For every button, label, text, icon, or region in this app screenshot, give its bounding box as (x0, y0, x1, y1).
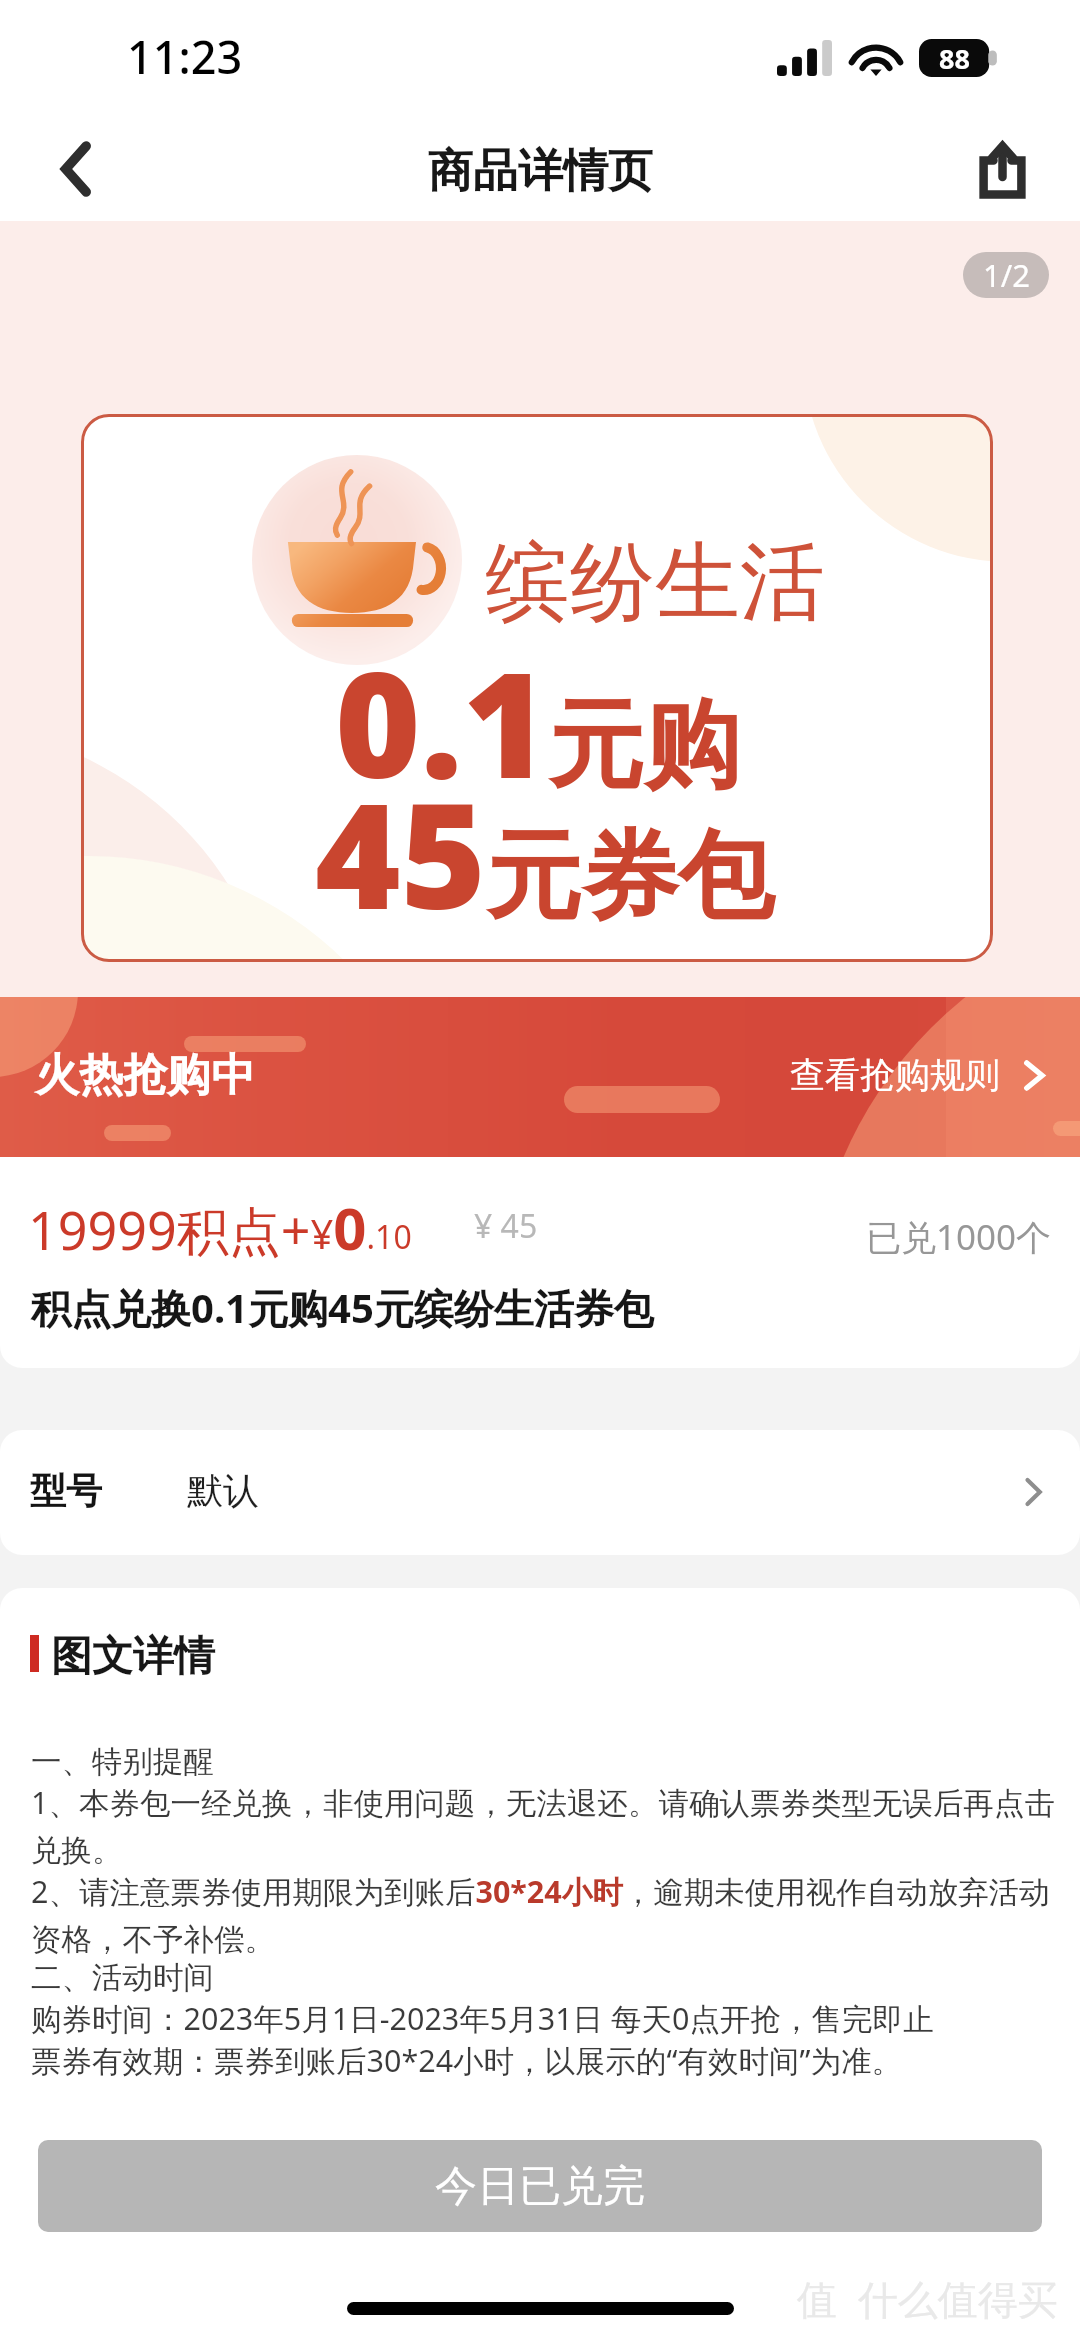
staticText: 45元券包 (315, 753, 775, 952)
button[interactable]: 缤纷生活 (0, 221, 1080, 997)
button[interactable]: Back (26, 117, 126, 221)
staticText: 11:23 (127, 26, 243, 87)
staticText: 型号 (30, 1468, 102, 1513)
staticText: 图文详情 (51, 1631, 215, 1683)
staticText: 查看抢购规则 (790, 1053, 1000, 1097)
staticText: 0.1元购 (335, 622, 741, 821)
staticText: 一、特别提醒 (31, 1743, 214, 1781)
button[interactable]: 今日已兑完 (38, 2140, 1042, 2232)
staticText: 19999积点+¥0.10 (28, 1188, 412, 1267)
staticText: 2、请注意票券使用期限为到账后30*24小时，逾期未使用视作自动放弃活动资格，不… (31, 1870, 1074, 1959)
staticText: 票券有效期：票券到账后30*24小时，以展示的“有效时间”为准。 (31, 2039, 902, 2081)
button[interactable]: Share (952, 117, 1052, 221)
staticText: 今日已兑完 (435, 2160, 645, 2213)
button[interactable]: 火热抢购中 (0, 997, 1080, 1157)
staticText: 已兑1000个 (866, 1213, 1052, 1261)
staticText: 火热抢购中 (35, 1048, 255, 1103)
staticText: 积点兑换0.1元购45元缤纷生活券包 (31, 1280, 654, 1335)
staticText: 1、本券包一经兑换，非使用问题，无法退还。请确认票券类型无误后再点击兑换。 (31, 1781, 1074, 1870)
staticText: 1/2 (983, 254, 1030, 296)
staticText: 默认 (187, 1468, 259, 1513)
staticText: 缤纷生活 (485, 529, 825, 636)
staticText: 88 (939, 40, 970, 77)
button[interactable]: 型号 (0, 1430, 1080, 1555)
staticText: 值 什么值得买 (797, 2271, 1058, 2326)
staticText: ¥ 45 (474, 1204, 538, 1248)
staticText: 二、活动时间 (31, 1959, 214, 1997)
staticText: 商品详情页 (428, 143, 653, 200)
staticText: 购券时间：2023年5月1日-2023年5月31日 每天0点开抢，售完即止 (31, 1997, 934, 2039)
